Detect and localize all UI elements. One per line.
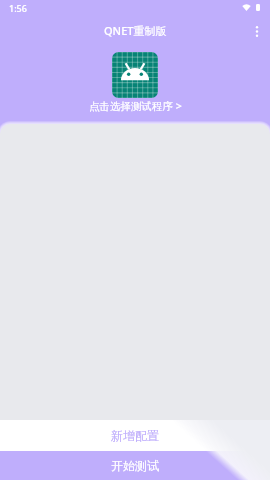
button[interactable]: 新增配置: [0, 420, 270, 451]
staticText: QNET重制版: [104, 23, 167, 38]
staticText: 点击选择测试程序 >: [89, 99, 182, 113]
button[interactable]: Select test app: [112, 52, 158, 98]
staticText: 1:56: [9, 2, 27, 14]
button[interactable]: More options: [244, 17, 270, 45]
staticText: 开始测试: [111, 458, 159, 473]
button[interactable]: 开始测试: [0, 451, 270, 480]
staticText: 新增配置: [111, 428, 159, 443]
button[interactable]: 点击选择测试程序 >: [83, 98, 188, 114]
